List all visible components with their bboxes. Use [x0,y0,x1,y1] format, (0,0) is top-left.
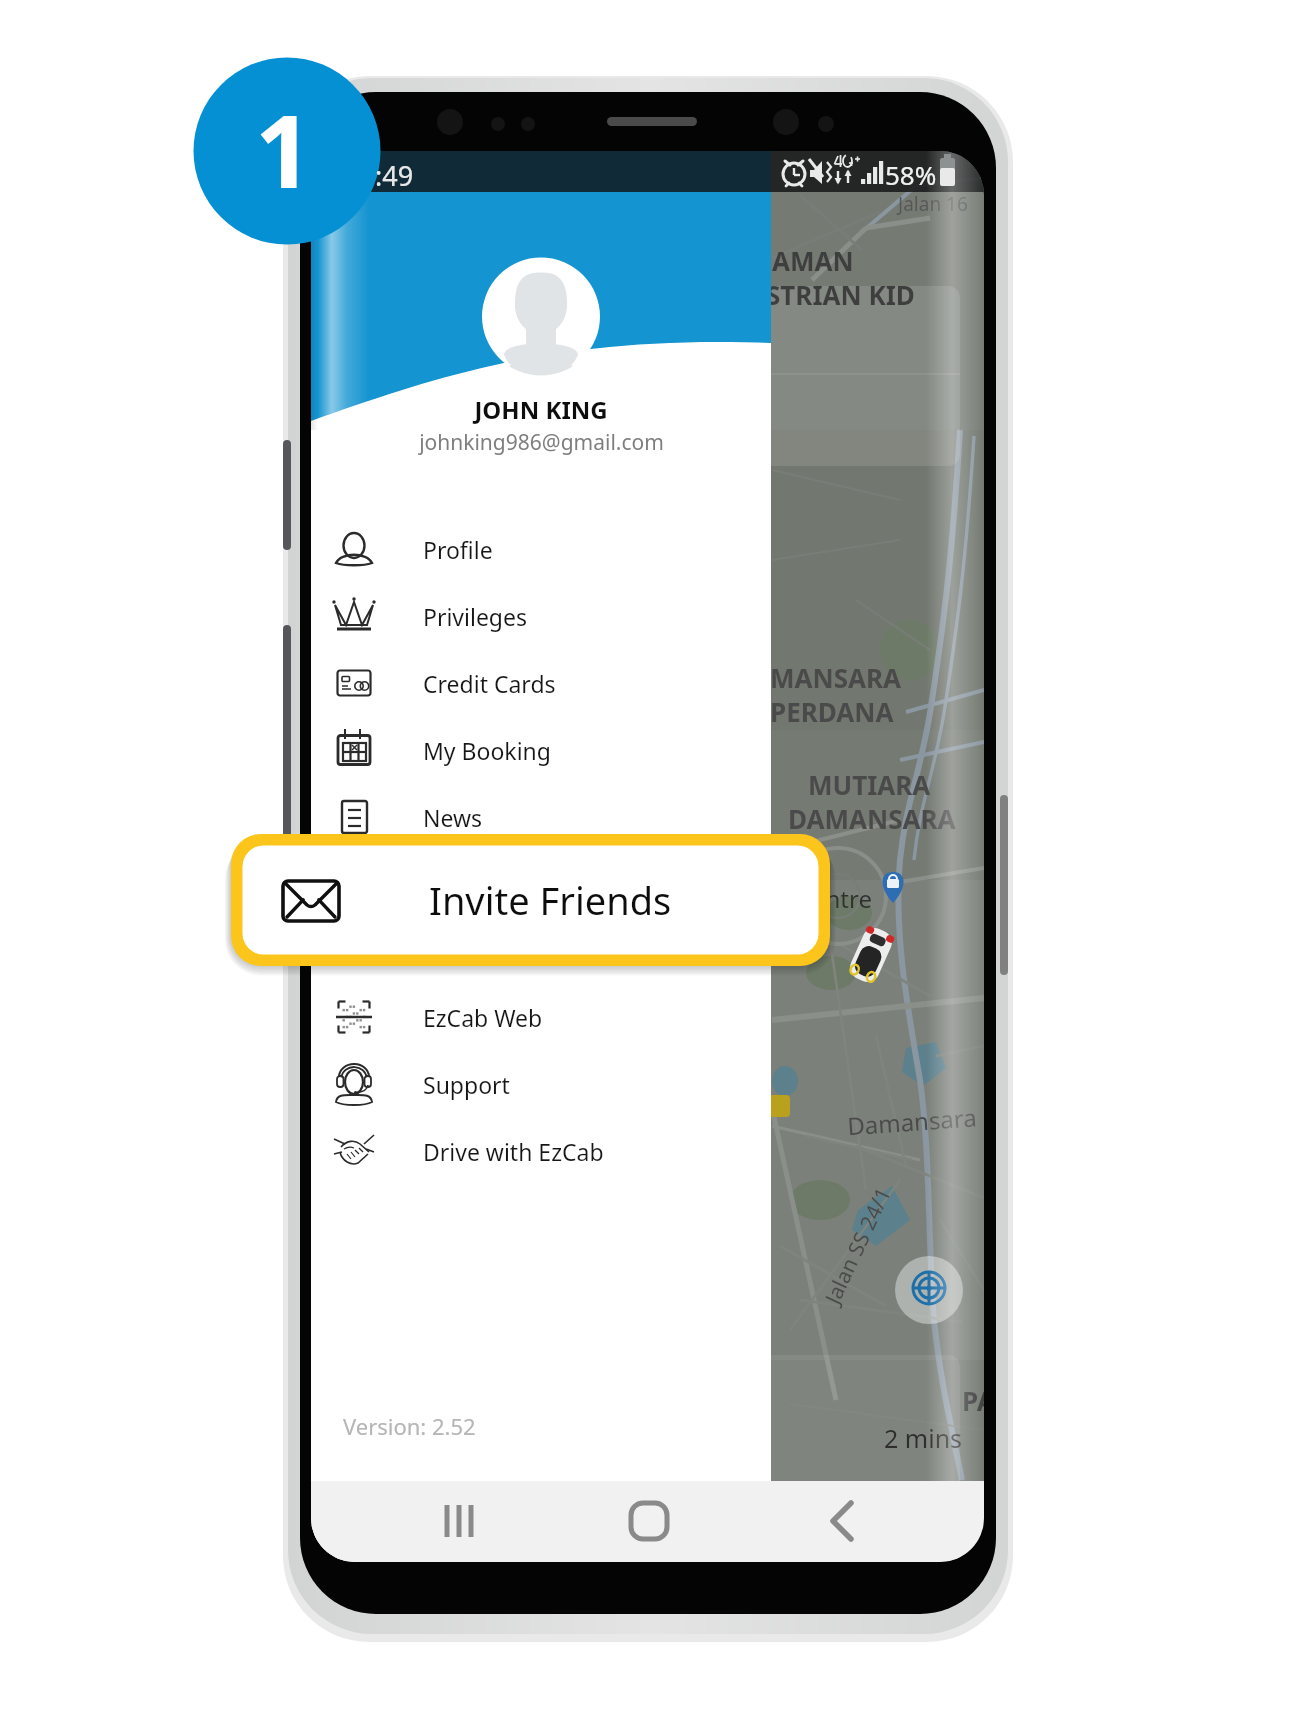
staticText: Profile [423,534,493,565]
button[interactable]: Home [608,1481,690,1562]
staticText: entre [812,882,872,915]
button[interactable]: Credit Cards [311,650,771,717]
staticText: 1 [255,81,313,217]
staticText: STRIAN KID [771,277,915,312]
button[interactable]: Drive with EzCab [311,1118,771,1185]
button[interactable]: My Booking [311,717,771,784]
staticText: Privileges [423,601,528,632]
staticText: Support [423,1069,510,1100]
staticText: AMAN [772,243,854,278]
staticText: DESA [890,151,956,185]
staticText: My Booking [423,735,551,766]
button[interactable]: My location [895,1256,963,1324]
staticText: Damansara Link [846,1097,984,1142]
button[interactable]: News [311,784,771,851]
staticText: Credit Cards [423,668,556,699]
staticText: johnking986@gmail.com [419,428,664,457]
button[interactable]: Profile picture [482,257,600,375]
staticText: Drive with EzCab [423,1136,604,1167]
button[interactable]: Invite Friends [231,834,830,966]
button[interactable]: Profile [311,516,771,583]
button[interactable]: Privileges [311,583,771,650]
staticText: Version: 2.52 [343,1411,476,1441]
staticText: Invite Friends [429,874,672,926]
button[interactable]: Your driver [845,925,901,981]
button[interactable]: EzCab Web [311,984,771,1051]
staticText: MANSARA [771,660,902,695]
button[interactable]: Back [800,1481,890,1562]
staticText: PERDANA [771,694,894,729]
staticText: MUTIARA [808,767,931,802]
staticText: 58% [885,157,937,192]
button[interactable]: Shopping centre [875,866,911,906]
staticText: :49 [375,157,414,194]
button[interactable]: Support [311,1051,771,1118]
staticText: News [423,802,483,833]
staticText: DAMANSARA [788,801,956,836]
staticText: 2 mins [884,1421,963,1455]
staticText: EzCab Web [423,1002,543,1033]
staticText: JOHN KING [474,393,608,426]
button[interactable]: Recent apps [390,1481,520,1562]
staticText: Jalan 16 [898,191,968,217]
staticText: PA [962,1383,984,1418]
staticText: Jalan SS 24/1 [818,1182,898,1309]
